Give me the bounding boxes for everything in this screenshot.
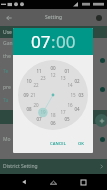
staticText: 04 xyxy=(74,106,80,112)
staticText: Ta xyxy=(3,97,9,104)
staticText: 17 xyxy=(60,109,66,115)
staticText: OK xyxy=(78,141,84,147)
staticText: 20 xyxy=(33,102,39,108)
button[interactable]: Add xyxy=(95,114,107,127)
button[interactable]: 00 xyxy=(56,30,76,53)
staticText: 00 xyxy=(56,30,76,53)
staticText: 11 xyxy=(36,68,42,74)
staticText: 03 xyxy=(78,92,84,98)
staticText: 07 xyxy=(31,30,51,53)
staticText: 22 xyxy=(33,82,39,88)
button[interactable]: Mo xyxy=(0,133,107,146)
staticText: the xyxy=(3,53,11,60)
staticText: 16 xyxy=(67,102,73,108)
staticText: 23 xyxy=(40,75,46,81)
button[interactable]: Home xyxy=(45,174,61,190)
staticText: Mo xyxy=(3,136,11,143)
staticText: 13 xyxy=(60,75,66,81)
staticText: District Setting xyxy=(3,163,38,170)
staticText: 02 xyxy=(74,78,80,84)
button[interactable]: Recents xyxy=(75,174,91,190)
staticText: 05 xyxy=(64,116,70,122)
staticText: CANCEL xyxy=(50,141,66,147)
staticText: Use xyxy=(3,29,12,36)
button[interactable]: Gan xyxy=(0,37,107,50)
button[interactable]: Toggle xyxy=(100,58,105,63)
staticText: : xyxy=(51,30,56,53)
button[interactable]: Toggle xyxy=(100,87,105,92)
button[interactable]: More options xyxy=(90,9,107,26)
staticText: 06 xyxy=(50,120,56,126)
staticText: 08 xyxy=(26,106,32,112)
button[interactable]: Back xyxy=(0,9,17,26)
staticText: 19 xyxy=(40,109,46,115)
button[interactable]: the xyxy=(0,50,107,63)
staticText: 18 xyxy=(50,112,56,118)
staticText: 12 xyxy=(50,72,56,78)
button[interactable]: Use xyxy=(0,26,107,38)
staticText: Te xyxy=(3,68,9,75)
staticText: pre xyxy=(3,84,11,91)
button[interactable]: pre xyxy=(0,81,107,94)
button[interactable]: District Setting xyxy=(0,159,107,174)
staticText: 00 xyxy=(50,65,56,71)
staticText: 15 xyxy=(70,92,76,98)
staticText: Setting xyxy=(45,14,63,21)
staticText: 21 xyxy=(30,92,36,98)
button[interactable]: OK xyxy=(76,139,86,149)
button[interactable]: CANCEL xyxy=(48,139,68,149)
staticText: Gan xyxy=(3,40,13,47)
button[interactable]: Ta xyxy=(0,94,107,107)
staticText: 07 xyxy=(36,116,42,122)
button[interactable]: Toggle xyxy=(100,137,105,142)
button[interactable]: Back xyxy=(16,174,32,190)
staticText: 09 xyxy=(23,92,29,98)
staticText: 10 xyxy=(26,78,32,84)
button[interactable]: Te xyxy=(0,65,107,78)
button[interactable] xyxy=(0,110,107,124)
button[interactable]: 07 xyxy=(31,30,51,53)
staticText: 14 xyxy=(67,82,73,88)
staticText: 01 xyxy=(64,68,70,74)
